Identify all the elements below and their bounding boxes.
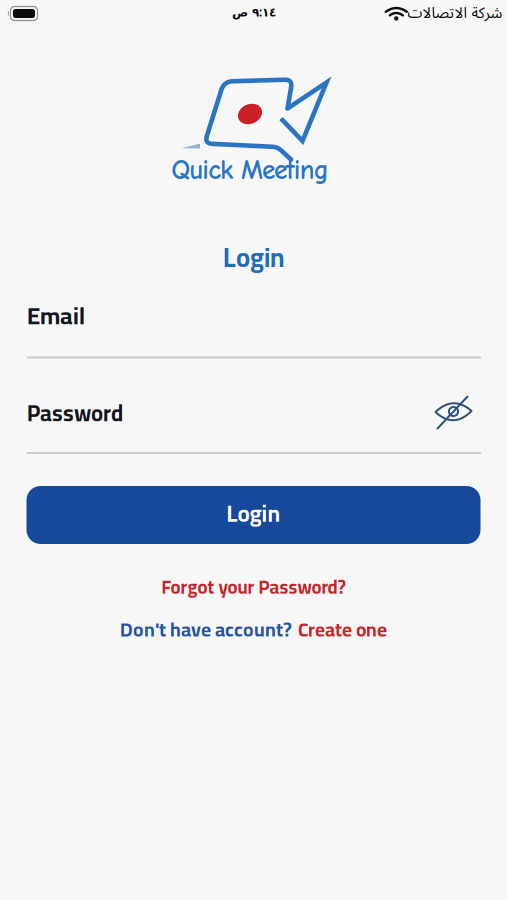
staticText: Forgot your Password? [161,570,345,604]
staticText: Don't have account? [120,611,292,648]
staticText: Quick Meeting [171,154,329,186]
button[interactable]: Email [0,293,507,358]
button[interactable]: Login [26,486,480,544]
staticText: Login [226,492,280,535]
staticText: شركة الاتصالات [407,2,502,22]
staticText: Email [27,293,85,338]
button[interactable]: Show password [430,390,476,434]
button[interactable]: Forgot your Password? [161,570,345,604]
button[interactable]: Password [0,391,507,455]
staticText: ٩:١٤ ص [231,4,275,20]
staticText: Create one [298,611,387,648]
staticText: Login [223,233,284,282]
staticText: Password [27,392,123,434]
button[interactable]: Create one [298,611,387,648]
